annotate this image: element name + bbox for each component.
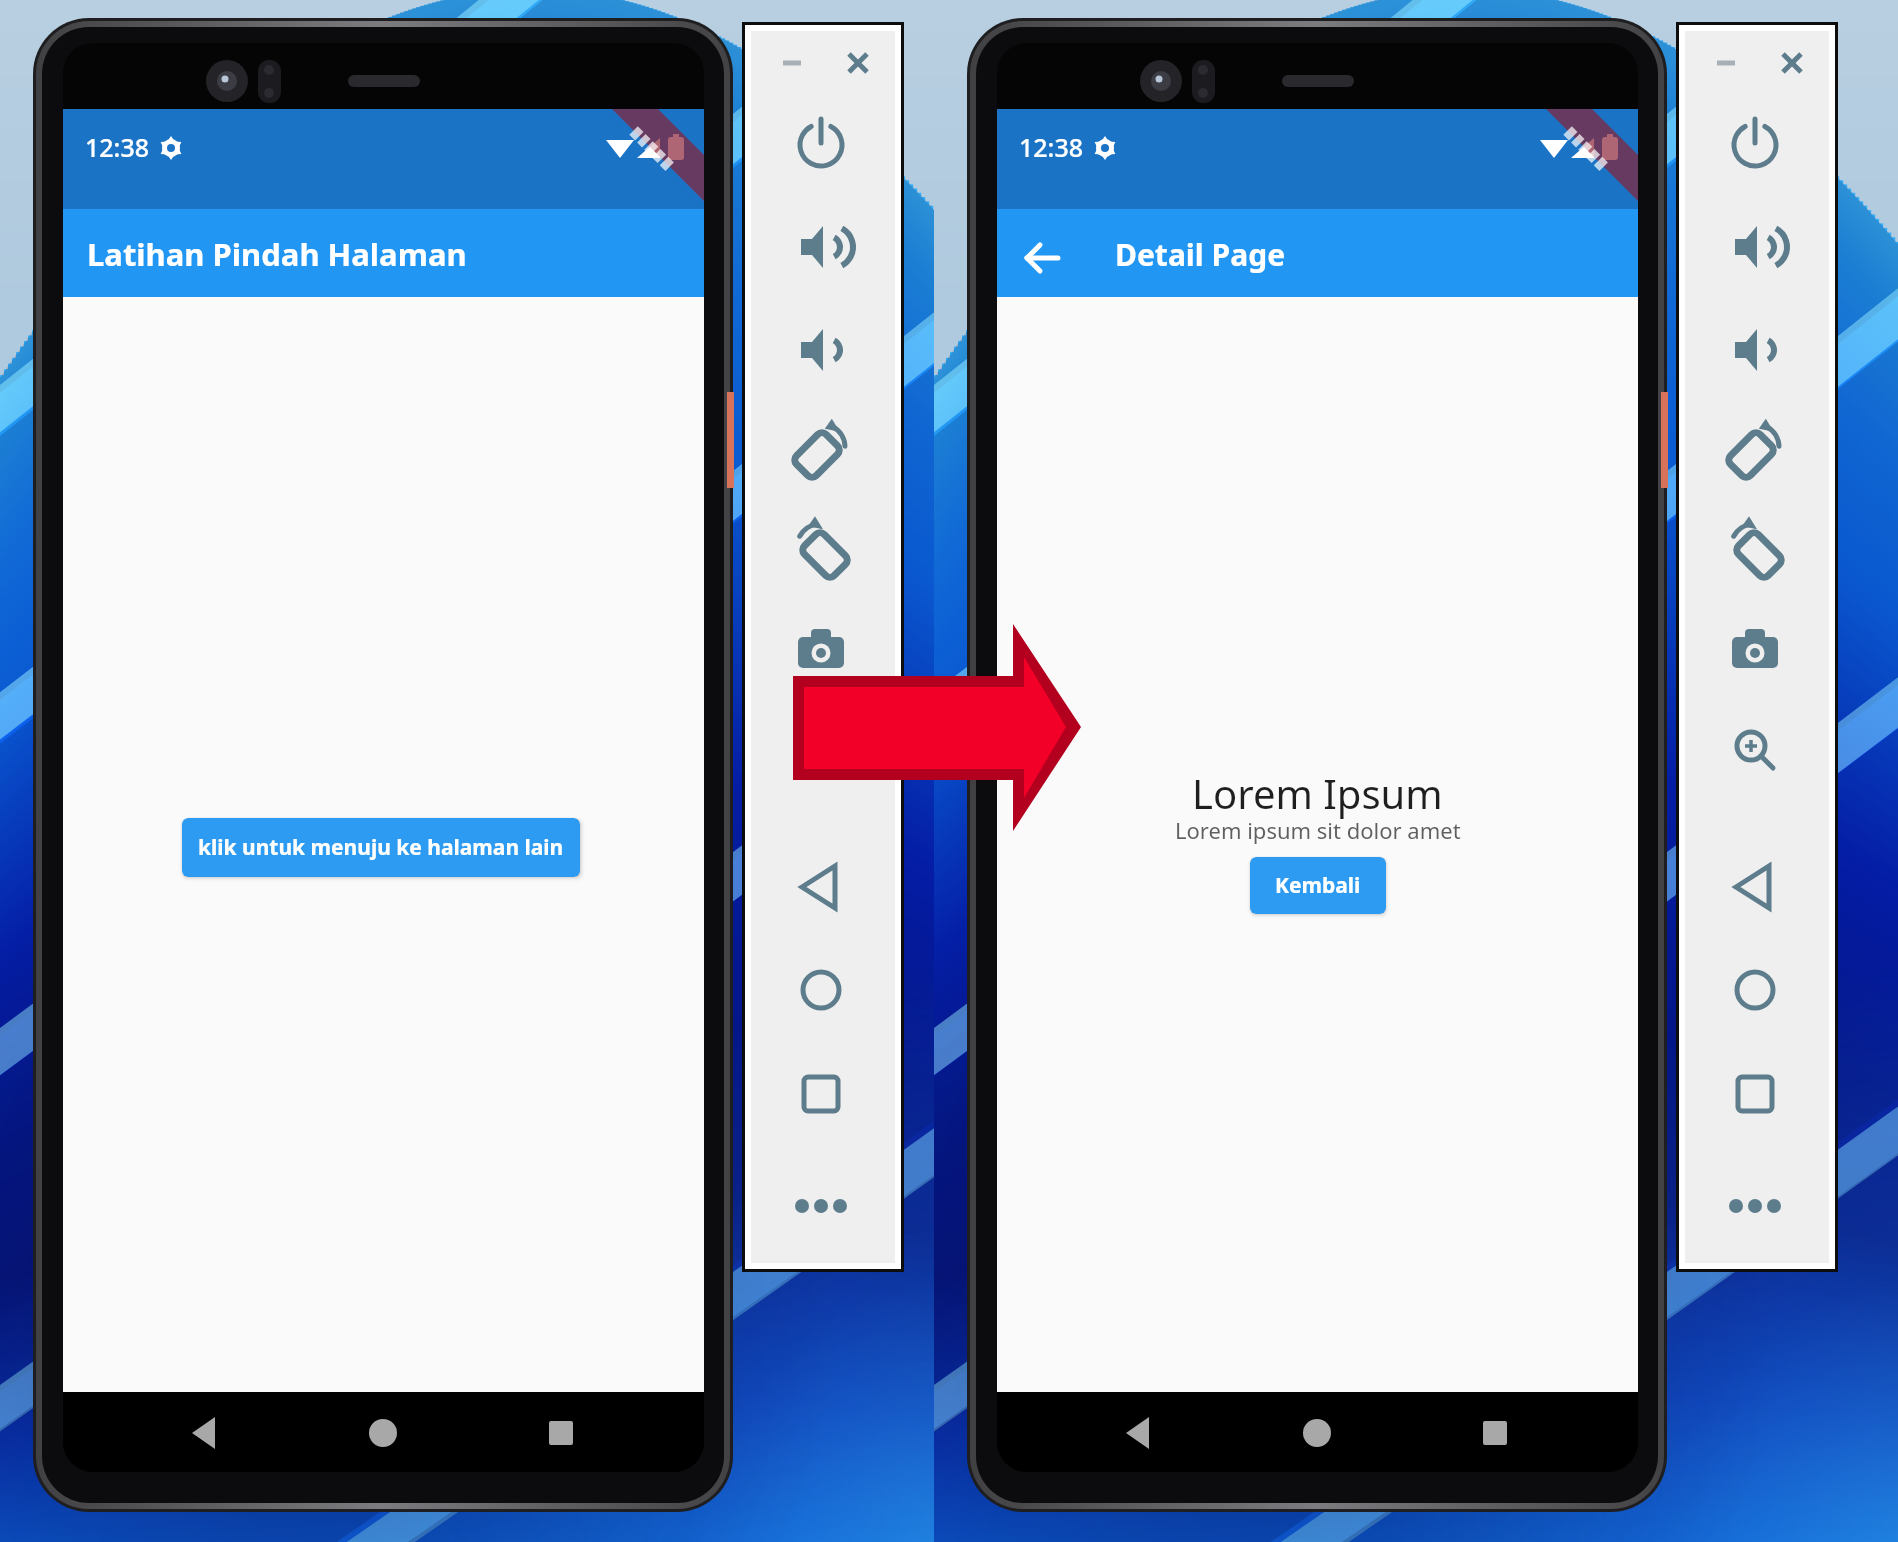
staticText: 12:38 (85, 130, 150, 164)
staticText: klik untuk menuju ke halaman lain (198, 833, 564, 862)
button[interactable]: Power (789, 113, 853, 177)
button[interactable]: More (1723, 1174, 1787, 1238)
button[interactable]: More (789, 1174, 853, 1238)
button[interactable]: Screenshot (789, 618, 853, 682)
staticText: 12:38 (1019, 130, 1084, 164)
button[interactable]: Rotate left (789, 418, 853, 482)
staticText: Latihan Pindah Halaman (87, 233, 467, 275)
staticText: Kembali (1275, 871, 1361, 900)
button[interactable]: Rotate right (789, 518, 853, 582)
button[interactable]: Rotate left (1723, 418, 1787, 482)
button[interactable]: Kembali (1250, 857, 1386, 914)
button[interactable]: Zoom (789, 720, 853, 784)
button[interactable]: Power (1723, 113, 1787, 177)
button[interactable]: Back (789, 855, 853, 919)
button[interactable]: Zoom (1723, 720, 1787, 784)
staticText: Lorem ipsum sit dolor amet (1175, 815, 1461, 845)
button[interactable]: Volume up (1723, 215, 1787, 279)
staticText: Lorem Ipsum (1192, 766, 1443, 820)
button[interactable]: Overview (789, 1062, 853, 1126)
button[interactable]: Screenshot (1723, 618, 1787, 682)
button[interactable]: klik untuk menuju ke halaman lain (182, 818, 580, 877)
button[interactable]: Volume down (1723, 318, 1787, 382)
button[interactable]: Home (789, 958, 853, 1022)
staticText: Detail Page (1115, 234, 1286, 275)
button[interactable]: Back (1007, 221, 1079, 293)
button[interactable]: Volume down (789, 318, 853, 382)
button[interactable]: Home (1723, 958, 1787, 1022)
button[interactable]: Rotate right (1723, 518, 1787, 582)
button[interactable]: Back (1723, 855, 1787, 919)
button[interactable]: Overview (1723, 1062, 1787, 1126)
button[interactable]: Volume up (789, 215, 853, 279)
